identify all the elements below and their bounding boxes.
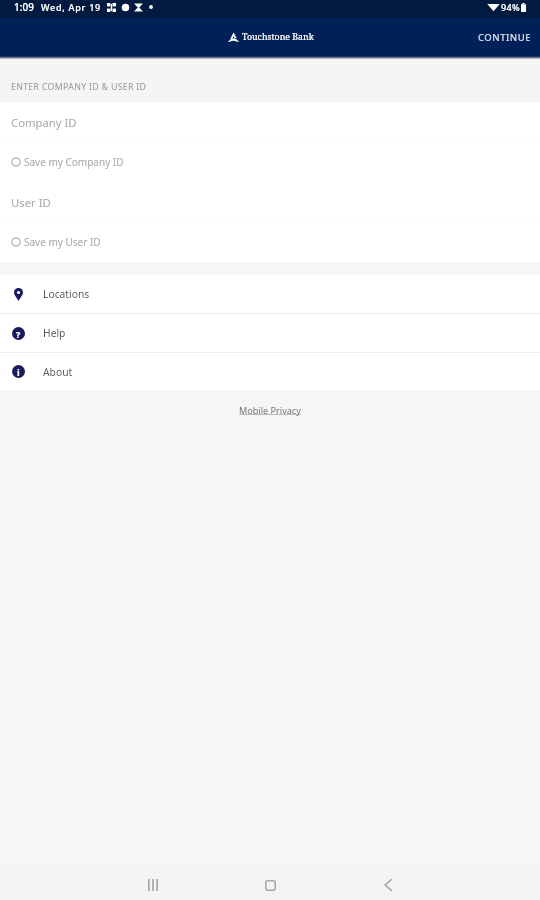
button[interactable]: Touchstone Bank — [227, 31, 314, 43]
button[interactable]: Save my User ID — [0, 222, 540, 262]
staticText: ENTER COMPANY ID & USER ID — [11, 81, 147, 93]
staticText: Company ID — [11, 115, 77, 130]
staticText: Touchstone Bank — [242, 31, 314, 43]
staticText: CONTINUE — [478, 31, 532, 44]
button[interactable]: Locations — [0, 275, 540, 313]
staticText: Help — [43, 326, 66, 340]
button[interactable]: Save my Company ID — [0, 142, 540, 182]
button[interactable]: Home — [246, 870, 294, 900]
staticText: Locations — [43, 287, 90, 301]
button[interactable]: Mobile Privacy — [239, 404, 301, 416]
staticText: User ID — [11, 195, 51, 210]
button[interactable]: ? — [0, 314, 540, 352]
button[interactable]: Company ID — [0, 102, 540, 142]
staticText: 94% — [501, 1, 520, 13]
staticText: ? — [16, 328, 21, 340]
staticText: Wed, Apr 19 — [41, 1, 102, 13]
button[interactable]: Back — [364, 870, 412, 900]
staticText: i — [17, 366, 20, 378]
staticText: About — [43, 365, 73, 379]
button[interactable]: User ID — [0, 182, 540, 222]
staticText: Save my Company ID — [24, 155, 124, 169]
staticText: 1:09 — [14, 0, 34, 14]
button[interactable]: Recent apps — [129, 870, 177, 900]
staticText: Save my User ID — [24, 235, 101, 249]
button[interactable]: CONTINUE — [468, 23, 540, 52]
button[interactable]: i — [0, 353, 540, 390]
